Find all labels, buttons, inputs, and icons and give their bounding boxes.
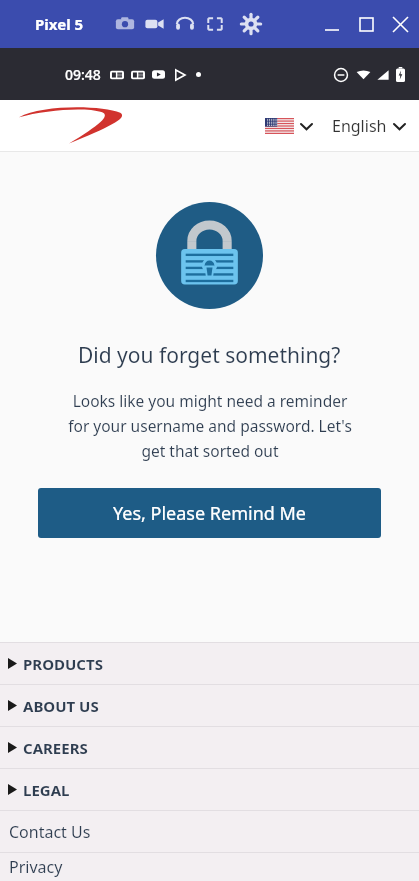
button[interactable]: Select country <box>261 114 316 138</box>
staticText: Privacy <box>9 856 63 878</box>
staticText: English <box>332 115 387 137</box>
staticText: 09:48 <box>65 65 101 84</box>
button[interactable]: Record screen <box>143 12 167 36</box>
staticText: Yes, Please Remind Me <box>113 501 306 526</box>
staticText: ABOUT US <box>23 696 99 716</box>
button[interactable]: Screenshot <box>113 12 137 36</box>
staticText: Looks like you might need a reminder for… <box>68 390 352 461</box>
button[interactable]: English <box>328 111 409 141</box>
button[interactable]: Contact Us <box>0 811 419 852</box>
staticText: Did you forget something? <box>78 341 341 370</box>
button[interactable]: Privacy <box>0 853 419 881</box>
staticText: Pixel 5 <box>35 14 84 34</box>
button[interactable]: PRODUCTS <box>0 643 419 684</box>
staticText: PRODUCTS <box>23 654 103 674</box>
staticText: Contact Us <box>9 821 91 843</box>
button[interactable]: Capital One home <box>4 104 129 148</box>
staticText: LEGAL <box>23 780 70 800</box>
button[interactable]: LEGAL <box>0 769 419 810</box>
button[interactable]: Minimize <box>319 11 345 37</box>
button[interactable]: Close <box>387 11 413 37</box>
button[interactable]: Settings <box>239 12 263 36</box>
staticText: CAREERS <box>23 738 88 758</box>
button[interactable]: ABOUT US <box>0 685 419 726</box>
button[interactable]: Maximize <box>353 11 379 37</box>
button[interactable]: CAREERS <box>0 727 419 768</box>
button[interactable]: Resize <box>203 12 227 36</box>
button[interactable]: Audio <box>173 12 197 36</box>
button[interactable]: Yes, Please Remind Me <box>38 488 381 538</box>
